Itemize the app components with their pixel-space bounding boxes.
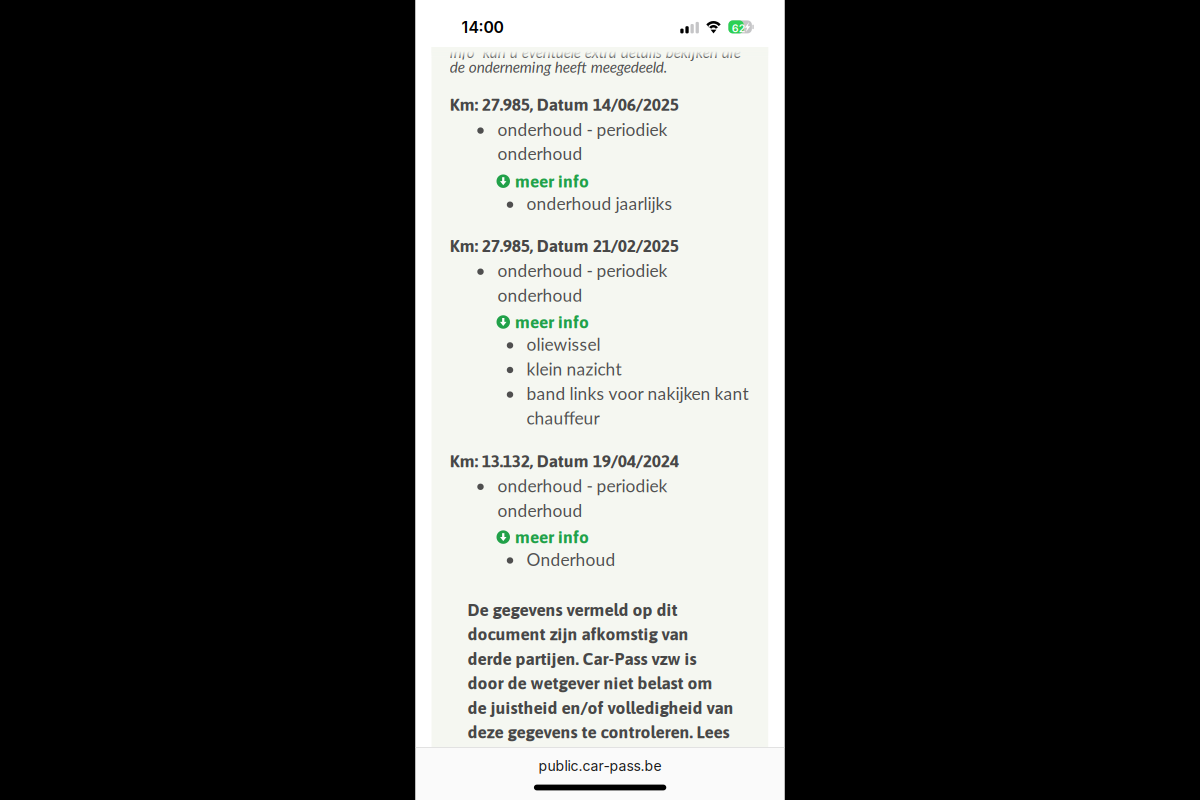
staticText: info” kan u eventuele extra details beki…	[450, 43, 741, 61]
staticText: Km: 27.985, Datum 21/02/2025	[450, 236, 679, 256]
staticText: door de wetgever niet belast om	[467, 673, 712, 693]
staticText: Onderhoud	[526, 549, 615, 570]
staticText: band links voor nakijken kant	[526, 383, 748, 404]
staticText: onderhoud - periodiek	[497, 119, 667, 140]
staticText: oliewissel	[526, 334, 600, 354]
staticText: meer info	[515, 312, 589, 332]
staticText: 62	[732, 22, 746, 35]
staticText: deze gegevens te controleren. Lees	[467, 722, 729, 742]
staticText: meer info	[515, 527, 589, 547]
staticText: de juistheid en/of volledigheid van	[467, 698, 733, 718]
staticText: onderhoud - periodiek	[497, 475, 667, 496]
staticText: onderhoud	[497, 285, 582, 305]
staticText: Km: 13.132, Datum 19/04/2024	[450, 451, 679, 471]
staticText: 14:00	[461, 18, 503, 37]
staticText: onderhoud - periodiek	[497, 260, 667, 281]
staticText: Km: 27.985, Datum 14/06/2025	[450, 94, 679, 114]
staticText: De gegevens vermeld op dit	[467, 600, 677, 620]
button[interactable]: meer info	[431, 47, 703, 72]
staticText: public.car-pass.be	[538, 757, 661, 774]
button[interactable]: meer info	[431, 47, 703, 72]
staticText: de onderneming heeft meegedeeld.	[450, 58, 668, 76]
staticText: klein nazicht	[526, 358, 621, 379]
button[interactable]: meer info	[431, 47, 703, 72]
staticText: onderhoud jaarlijks	[526, 193, 672, 214]
staticText: derde partijen. Car-Pass vzw is	[467, 649, 696, 669]
button[interactable]: public.car-pass.be	[415, 756, 784, 776]
staticText: onderhoud	[497, 500, 582, 521]
staticText: chauffeur	[526, 407, 599, 428]
staticText: document zijn afkomstig van	[467, 624, 688, 644]
staticText: meer info	[515, 171, 589, 191]
staticText: onderhoud	[497, 143, 582, 164]
